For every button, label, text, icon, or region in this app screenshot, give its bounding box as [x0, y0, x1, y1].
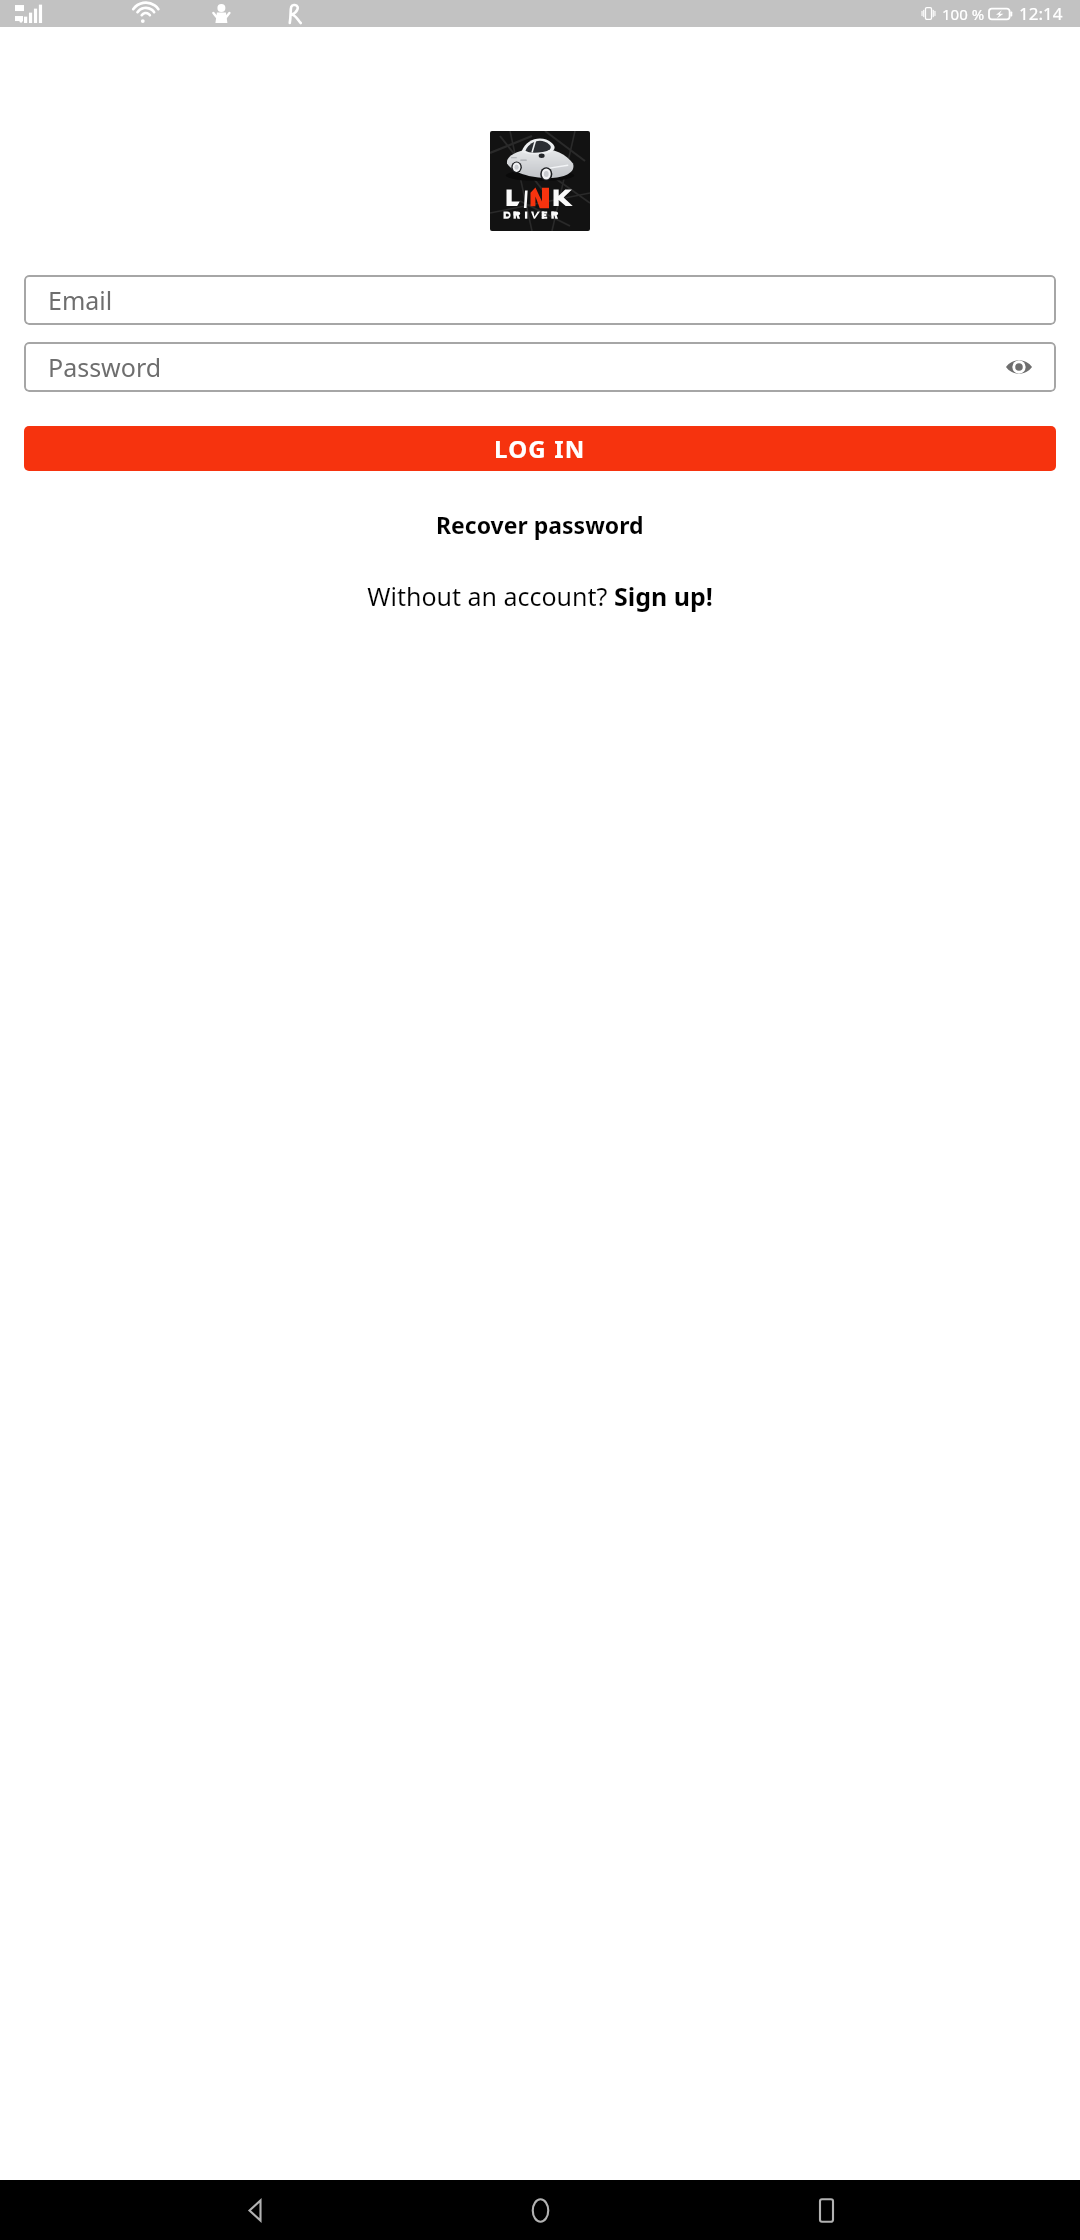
- staticText: 100 %: [942, 4, 985, 24]
- button[interactable]: LOG IN: [24, 426, 1056, 471]
- staticText: LOG IN: [494, 432, 586, 465]
- button[interactable]: Show password: [1002, 350, 1036, 384]
- staticText: Recover password: [436, 509, 644, 540]
- button[interactable]: Recent apps: [794, 2180, 858, 2240]
- button[interactable]: Home: [508, 2180, 572, 2240]
- button[interactable]: Password: [24, 342, 1056, 392]
- staticText: Email: [48, 283, 113, 317]
- staticText: 12:14: [1019, 2, 1063, 25]
- button[interactable]: Recover password: [0, 500, 1080, 549]
- button[interactable]: Back: [222, 2180, 286, 2240]
- staticText: Without an account? Sign up!: [367, 579, 713, 613]
- button[interactable]: Email: [24, 275, 1056, 325]
- button[interactable]: Without an account? Sign up!: [0, 570, 1080, 622]
- staticText: Password: [48, 350, 162, 384]
